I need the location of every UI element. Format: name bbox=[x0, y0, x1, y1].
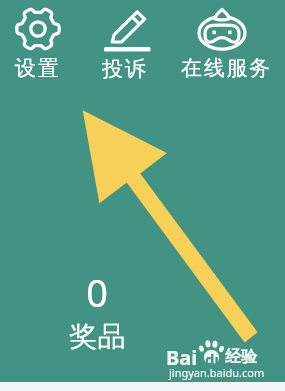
other: 在线服务 bbox=[198, 9, 246, 51]
other: 投诉 bbox=[104, 10, 151, 52]
staticText: 在线服务 bbox=[181, 55, 272, 81]
button[interactable]: 投诉 bbox=[94, 10, 160, 82]
staticText: 经验 bbox=[225, 347, 257, 367]
staticText: 投诉 bbox=[102, 56, 148, 82]
staticText: 奖品 bbox=[69, 319, 126, 354]
staticText: 设置 bbox=[15, 55, 61, 81]
staticText: jingyan.baidu.com bbox=[169, 365, 265, 380]
button[interactable]: 设置 bbox=[2, 5, 74, 81]
button[interactable]: 在线服务 bbox=[172, 9, 272, 81]
staticText: du bbox=[205, 349, 225, 369]
other: 设置 bbox=[14, 5, 62, 53]
staticText: Bai bbox=[166, 344, 198, 371]
staticText: 0 bbox=[86, 266, 108, 318]
